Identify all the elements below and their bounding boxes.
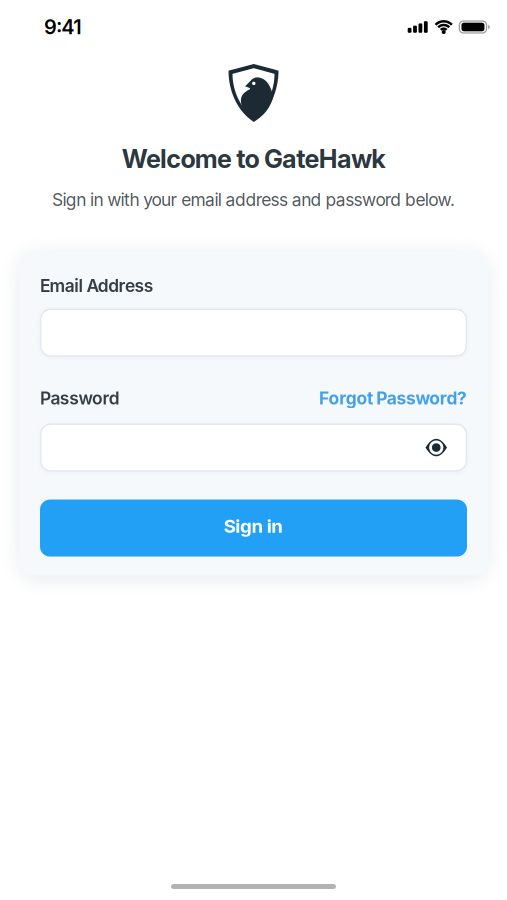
staticText: 9:41 [44, 15, 81, 39]
staticText: Forgot Password? [319, 388, 467, 409]
staticText: Sign in [224, 515, 283, 537]
staticText: Email Address [40, 275, 154, 296]
staticText: Welcome to GateHawk [122, 143, 385, 174]
staticText: Sign in with your email address and pass… [52, 189, 455, 210]
staticText: Password [40, 388, 120, 409]
